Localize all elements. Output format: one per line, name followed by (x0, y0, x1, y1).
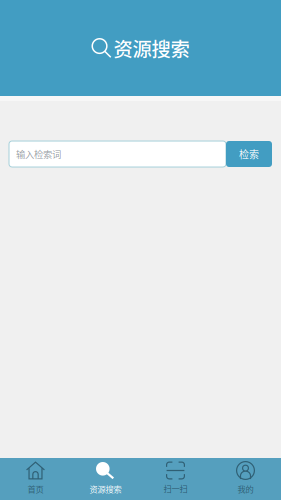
button[interactable]: 首页 (0, 458, 70, 500)
staticText: 我的 (237, 483, 253, 495)
button[interactable]: 扫一扫 (140, 458, 210, 500)
button[interactable]: 输入检索词 (9, 141, 226, 167)
staticText: 扫一扫 (163, 482, 187, 494)
staticText: 首页 (27, 483, 43, 495)
staticText: 资源搜索 (89, 483, 121, 495)
staticText: 输入检索词 (16, 147, 61, 161)
button[interactable]: 检索 (226, 141, 272, 167)
staticText: 检索 (239, 147, 259, 161)
button[interactable]: 资源搜索 (70, 458, 140, 500)
button[interactable]: 我的 (210, 458, 280, 500)
staticText: 资源搜索 (113, 34, 189, 62)
